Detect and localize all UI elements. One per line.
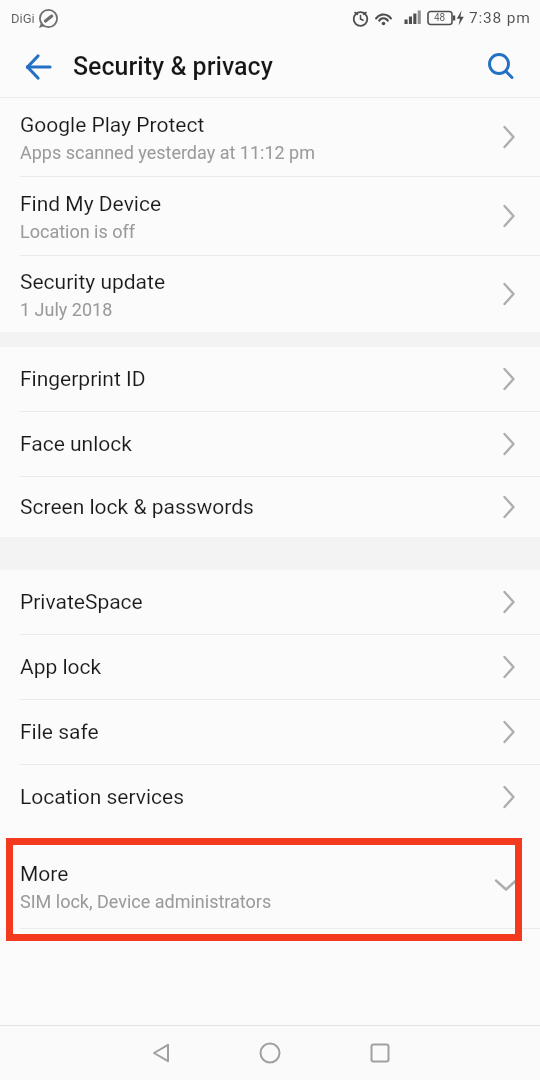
button[interactable] (250, 1033, 290, 1073)
staticText: Fingerprint ID (20, 367, 146, 392)
staticText: Location services (20, 785, 184, 810)
button[interactable]: Fingerprint ID (0, 347, 540, 411)
staticText: Security update (20, 270, 166, 295)
staticText: DiGi (11, 11, 35, 26)
staticText: PrivateSpace (20, 590, 143, 615)
button[interactable]: File safe (0, 700, 540, 764)
button[interactable]: Find My Device (0, 177, 540, 255)
staticText: Google Play Protect (20, 113, 205, 138)
staticText: 48 (434, 12, 446, 24)
button[interactable]: Face unlock (0, 412, 540, 476)
staticText: Face unlock (20, 432, 132, 457)
button[interactable]: More (0, 829, 540, 929)
staticText: File safe (20, 720, 99, 745)
button[interactable]: Location services (0, 765, 540, 829)
staticText: App lock (20, 655, 102, 680)
button[interactable] (360, 1033, 400, 1073)
staticText: Apps scanned yesterday at 11:12 pm (20, 142, 315, 163)
staticText: Location is off (20, 221, 136, 242)
staticText: Screen lock & passwords (20, 495, 254, 520)
button[interactable]: Screen lock & passwords (0, 477, 540, 537)
staticText: SIM lock, Device administrators (20, 891, 272, 912)
button[interactable] (141, 1033, 181, 1073)
button[interactable]: Security update (0, 256, 540, 332)
staticText: Find My Device (20, 192, 162, 217)
button[interactable] (22, 50, 56, 84)
button[interactable]: PrivateSpace (0, 570, 540, 634)
staticText: 7:38 pm (469, 9, 531, 27)
staticText: More (20, 862, 69, 887)
staticText: Security & privacy (73, 52, 273, 81)
button[interactable]: App lock (0, 635, 540, 699)
button[interactable] (483, 49, 519, 85)
button[interactable]: Google Play Protect (0, 98, 540, 176)
staticText: 1 July 2018 (20, 299, 113, 320)
